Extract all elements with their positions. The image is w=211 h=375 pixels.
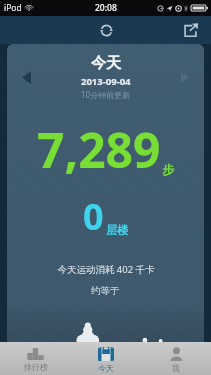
button[interactable]: Share — [177, 17, 203, 43]
staticText: 2013-09-04 — [81, 75, 131, 88]
staticText: 7,289 — [37, 117, 161, 182]
staticText: 10分钟前更新 — [81, 89, 131, 100]
staticText: 我 — [172, 363, 180, 373]
staticText: 0 — [83, 192, 104, 241]
button[interactable]: Previous day — [13, 62, 39, 92]
staticText: 排行榜 — [24, 362, 48, 372]
button[interactable]: 0 — [83, 192, 128, 241]
staticText: 今天 — [98, 363, 114, 373]
button[interactable]: 我 — [141, 342, 211, 375]
button[interactable]: Next day — [172, 62, 198, 92]
button[interactable]: 排行榜 — [0, 342, 71, 375]
staticText: 步 — [162, 162, 174, 177]
button[interactable]: Refresh — [91, 17, 121, 43]
staticText: 约等于 — [91, 285, 120, 297]
button[interactable]: 7,289 — [37, 117, 174, 182]
staticText: 今天运动消耗 402 千卡 — [57, 263, 155, 276]
staticText: 20:08 — [95, 2, 117, 14]
staticText: 今天 — [91, 54, 121, 73]
staticText: 层楼 — [106, 223, 128, 237]
staticText: iPod — [4, 2, 22, 14]
button[interactable]: 今天 — [71, 342, 141, 375]
